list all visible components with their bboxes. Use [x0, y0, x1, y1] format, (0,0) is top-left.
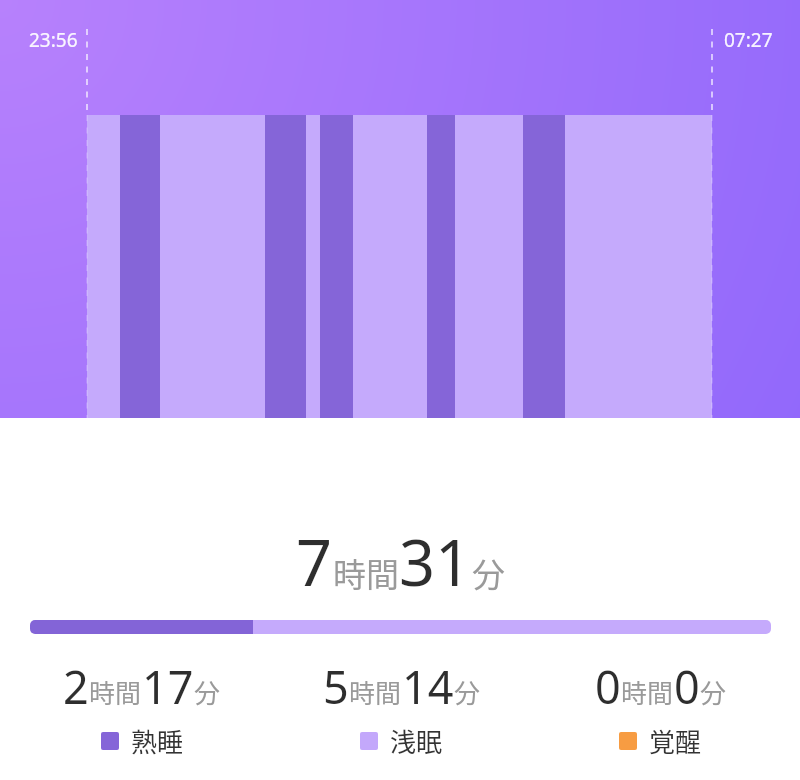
staticText: 31 [399, 519, 472, 605]
staticText: 分 [700, 673, 727, 711]
staticText: 覚醒 [649, 722, 702, 760]
staticText: 23:56 [29, 27, 78, 53]
staticText: 時間 [349, 673, 402, 711]
staticText: 分 [472, 549, 505, 597]
staticText: 0 [595, 656, 621, 717]
staticText: 17 [142, 656, 194, 717]
staticText: 浅眠 [390, 722, 443, 760]
staticText: 14 [402, 656, 454, 717]
staticText: 7 [296, 519, 333, 605]
button[interactable]: 覚醒 [619, 722, 702, 760]
button[interactable]: 熟睡 [101, 722, 184, 760]
staticText: 時間 [621, 673, 674, 711]
staticText: 5 [323, 656, 349, 717]
staticText: 07:27 [724, 27, 773, 53]
staticText: 時間 [333, 549, 399, 597]
staticText: 熟睡 [131, 722, 184, 760]
button[interactable]: 浅眠 [360, 722, 443, 760]
staticText: 分 [454, 673, 481, 711]
staticText: 0 [674, 656, 700, 717]
staticText: 時間 [89, 673, 142, 711]
staticText: 分 [194, 673, 221, 711]
staticText: 2 [63, 656, 89, 717]
